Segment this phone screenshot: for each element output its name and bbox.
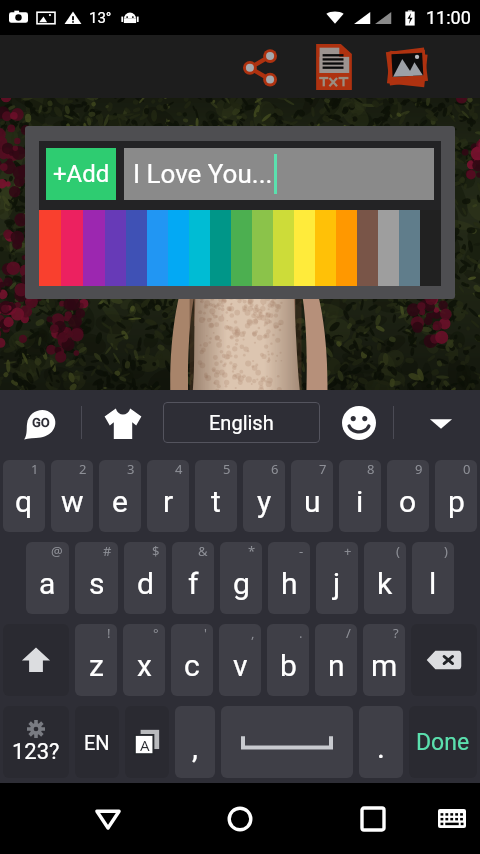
staticText: b: [280, 648, 297, 683]
button[interactable]: GO Keyboard: [10, 390, 70, 455]
staticText: l: [429, 566, 437, 601]
button[interactable]: .: [267, 624, 309, 696]
button[interactable]: Backspace: [411, 624, 477, 696]
button[interactable]: ,: [219, 624, 261, 696]
button[interactable]: Save as text: [310, 35, 358, 98]
button[interactable]: $: [124, 542, 166, 614]
staticText: 3: [127, 460, 135, 478]
staticText: GO: [32, 415, 50, 430]
button[interactable]: Emoji: [330, 390, 388, 455]
button[interactable]: 6: [243, 460, 285, 532]
button[interactable]: /: [315, 624, 357, 696]
button[interactable]: 9: [387, 460, 429, 532]
button[interactable]: Share: [236, 35, 284, 98]
staticText: .: [299, 624, 303, 642]
staticText: u: [304, 484, 321, 519]
button[interactable]: Numbers and symbols: [3, 706, 69, 778]
button[interactable]: .: [359, 706, 403, 778]
button[interactable]: ,: [175, 706, 215, 778]
button[interactable]: +Add: [46, 148, 116, 200]
button[interactable]: @: [26, 542, 69, 614]
button[interactable]: Theme: [93, 390, 153, 455]
staticText: 2: [79, 460, 87, 478]
button[interactable]: 2: [51, 460, 93, 532]
button[interactable]: Shift: [3, 624, 69, 696]
button[interactable]: *: [220, 542, 262, 614]
button[interactable]: #: [75, 542, 118, 614]
staticText: Done: [416, 729, 470, 756]
staticText: 7: [319, 460, 327, 478]
button[interactable]: 5: [195, 460, 237, 532]
staticText: EN: [84, 731, 110, 754]
button[interactable]: (: [364, 542, 406, 614]
button[interactable]: Home: [214, 783, 266, 854]
button[interactable]: English: [163, 402, 320, 443]
button[interactable]: Switch input method: [125, 706, 169, 778]
staticText: 11:00: [426, 7, 471, 28]
staticText: g: [233, 566, 250, 601]
button[interactable]: 8: [339, 460, 381, 532]
staticText: +Add: [53, 160, 110, 188]
button[interactable]: Done: [409, 706, 477, 778]
staticText: n: [328, 648, 345, 683]
staticText: j: [333, 566, 341, 601]
staticText: ': [204, 624, 207, 642]
button[interactable]: ': [171, 624, 213, 696]
button[interactable]: 3: [99, 460, 141, 532]
button[interactable]: +: [316, 542, 358, 614]
button[interactable]: &: [172, 542, 214, 614]
button[interactable]: Switch keyboard: [428, 783, 476, 854]
button[interactable]: °: [123, 624, 165, 696]
staticText: o: [399, 484, 417, 519]
staticText: /: [346, 624, 351, 642]
button[interactable]: Hide keyboard: [412, 390, 470, 455]
staticText: x: [137, 648, 152, 683]
button[interactable]: !: [75, 624, 117, 696]
staticText: f: [188, 566, 199, 601]
button[interactable]: I Love You...: [124, 148, 434, 200]
staticText: c: [184, 648, 200, 683]
button[interactable]: ?: [363, 624, 405, 696]
button[interactable]: 1: [3, 460, 45, 532]
staticText: ,: [192, 730, 198, 765]
button[interactable]: Save as image: [383, 35, 431, 98]
staticText: e: [112, 484, 128, 519]
staticText: 6: [271, 460, 279, 478]
button[interactable]: Language: [75, 706, 119, 778]
button[interactable]: 4: [147, 460, 189, 532]
staticText: q: [15, 484, 33, 519]
button[interactable]: 0: [435, 460, 477, 532]
staticText: -: [299, 542, 304, 560]
button[interactable]: Back: [82, 783, 134, 854]
button[interactable]: Recent apps: [347, 783, 399, 854]
button[interactable]: Space: [221, 706, 353, 778]
button[interactable]: -: [268, 542, 310, 614]
staticText: v: [233, 648, 248, 683]
staticText: .: [377, 730, 385, 765]
staticText: A: [140, 735, 150, 755]
staticText: ,: [251, 624, 255, 642]
staticText: 13°: [89, 9, 112, 27]
button[interactable]: 7: [291, 460, 333, 532]
button[interactable]: ): [412, 542, 454, 614]
staticText: 8: [367, 460, 375, 478]
